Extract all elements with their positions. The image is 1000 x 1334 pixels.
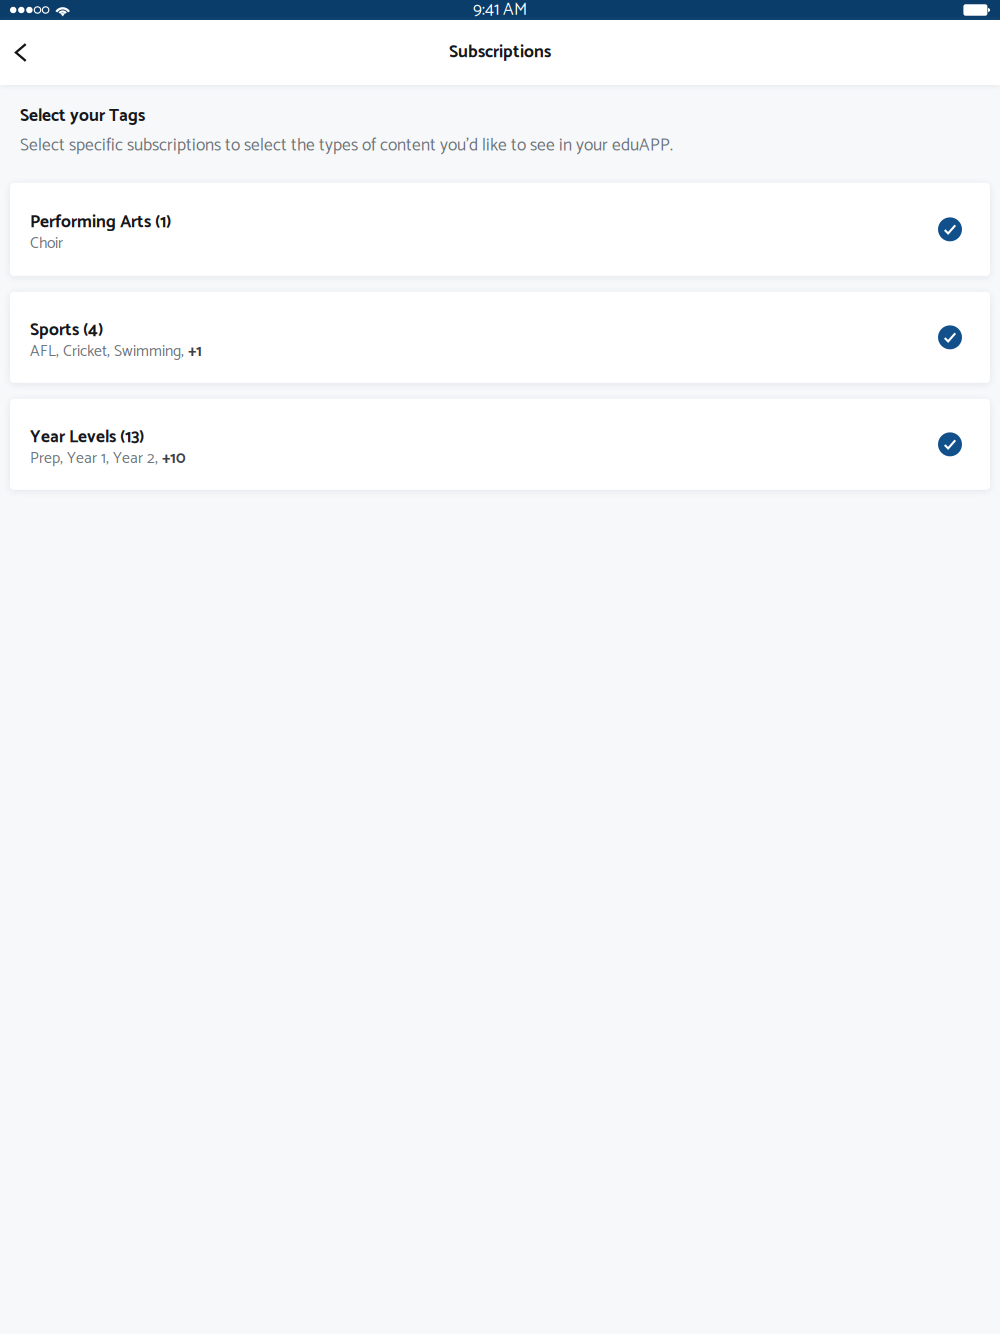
staticText: Prep, Year 1, Year 2, bbox=[30, 446, 162, 471]
staticText: Subscriptions bbox=[449, 38, 551, 67]
staticText: +10 bbox=[162, 446, 186, 471]
staticText: Select specific subscriptions to select … bbox=[20, 131, 673, 160]
staticText: Select your Tags bbox=[20, 102, 145, 130]
staticText: Performing Arts (1) bbox=[30, 208, 171, 237]
staticText: +1 bbox=[188, 339, 202, 364]
staticText: Year Levels (13) bbox=[30, 423, 144, 452]
button[interactable]: Back bbox=[0, 31, 45, 74]
button[interactable]: Year Levels (13) bbox=[10, 399, 990, 490]
button[interactable]: Sports (4) bbox=[10, 292, 990, 383]
staticText: AFL, Cricket, Swimming, bbox=[30, 339, 188, 364]
staticText: Sports (4) bbox=[30, 316, 103, 345]
button[interactable]: Performing Arts (1) bbox=[10, 183, 990, 276]
staticText: Choir bbox=[30, 231, 63, 256]
staticText: 9:41 AM bbox=[473, 0, 527, 24]
